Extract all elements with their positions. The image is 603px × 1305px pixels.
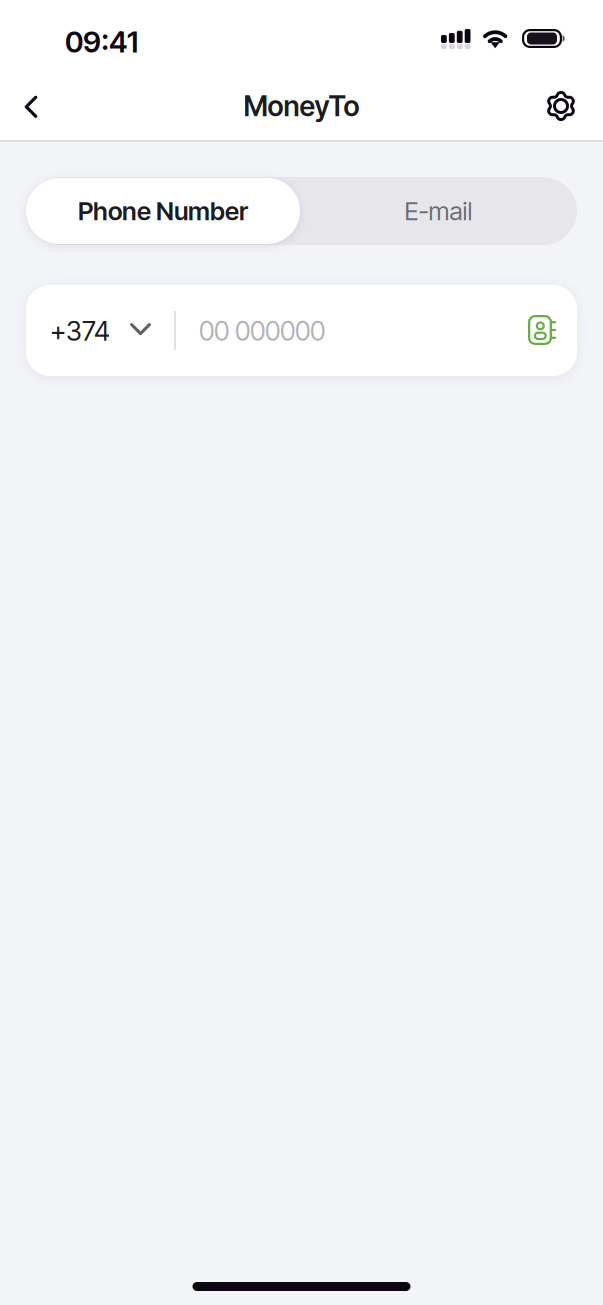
staticText: +374 bbox=[50, 315, 110, 347]
button[interactable]: E-mail bbox=[300, 177, 577, 245]
button[interactable]: Choose from contacts bbox=[513, 301, 571, 359]
staticText: E-mail bbox=[404, 196, 472, 226]
staticText: Phone Number bbox=[78, 196, 248, 226]
staticText: 00 000000 bbox=[199, 315, 325, 347]
button[interactable]: Country code +374 bbox=[26, 285, 175, 376]
staticText: MoneyTo bbox=[243, 89, 359, 123]
staticText: 09:41 bbox=[65, 24, 138, 59]
button[interactable]: Phone Number bbox=[26, 177, 300, 243]
button[interactable]: Settings bbox=[533, 76, 589, 134]
button[interactable]: Back bbox=[3, 76, 59, 134]
